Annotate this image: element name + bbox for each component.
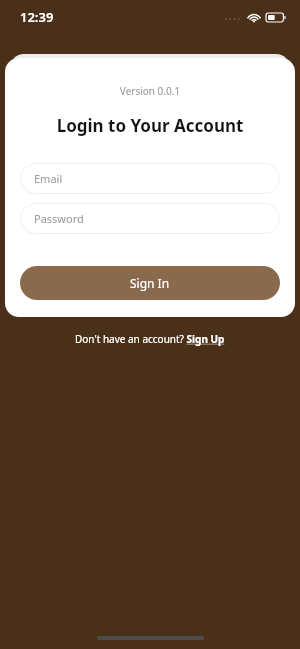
- button[interactable]: Email: [20, 163, 280, 194]
- button[interactable]: Sign In: [20, 266, 280, 300]
- button[interactable]: Password: [20, 203, 280, 234]
- staticText: Sign In: [130, 275, 170, 291]
- staticText: Password: [34, 211, 84, 226]
- button[interactable]: Don't have an account? Sign Up: [69, 330, 231, 348]
- staticText: Email: [34, 171, 63, 186]
- staticText: Don't have an account? Sign Up: [75, 332, 225, 346]
- staticText: 12:39: [20, 8, 54, 26]
- staticText: Login to Your Account: [20, 114, 280, 137]
- staticText: Version 0.0.1: [20, 84, 280, 98]
